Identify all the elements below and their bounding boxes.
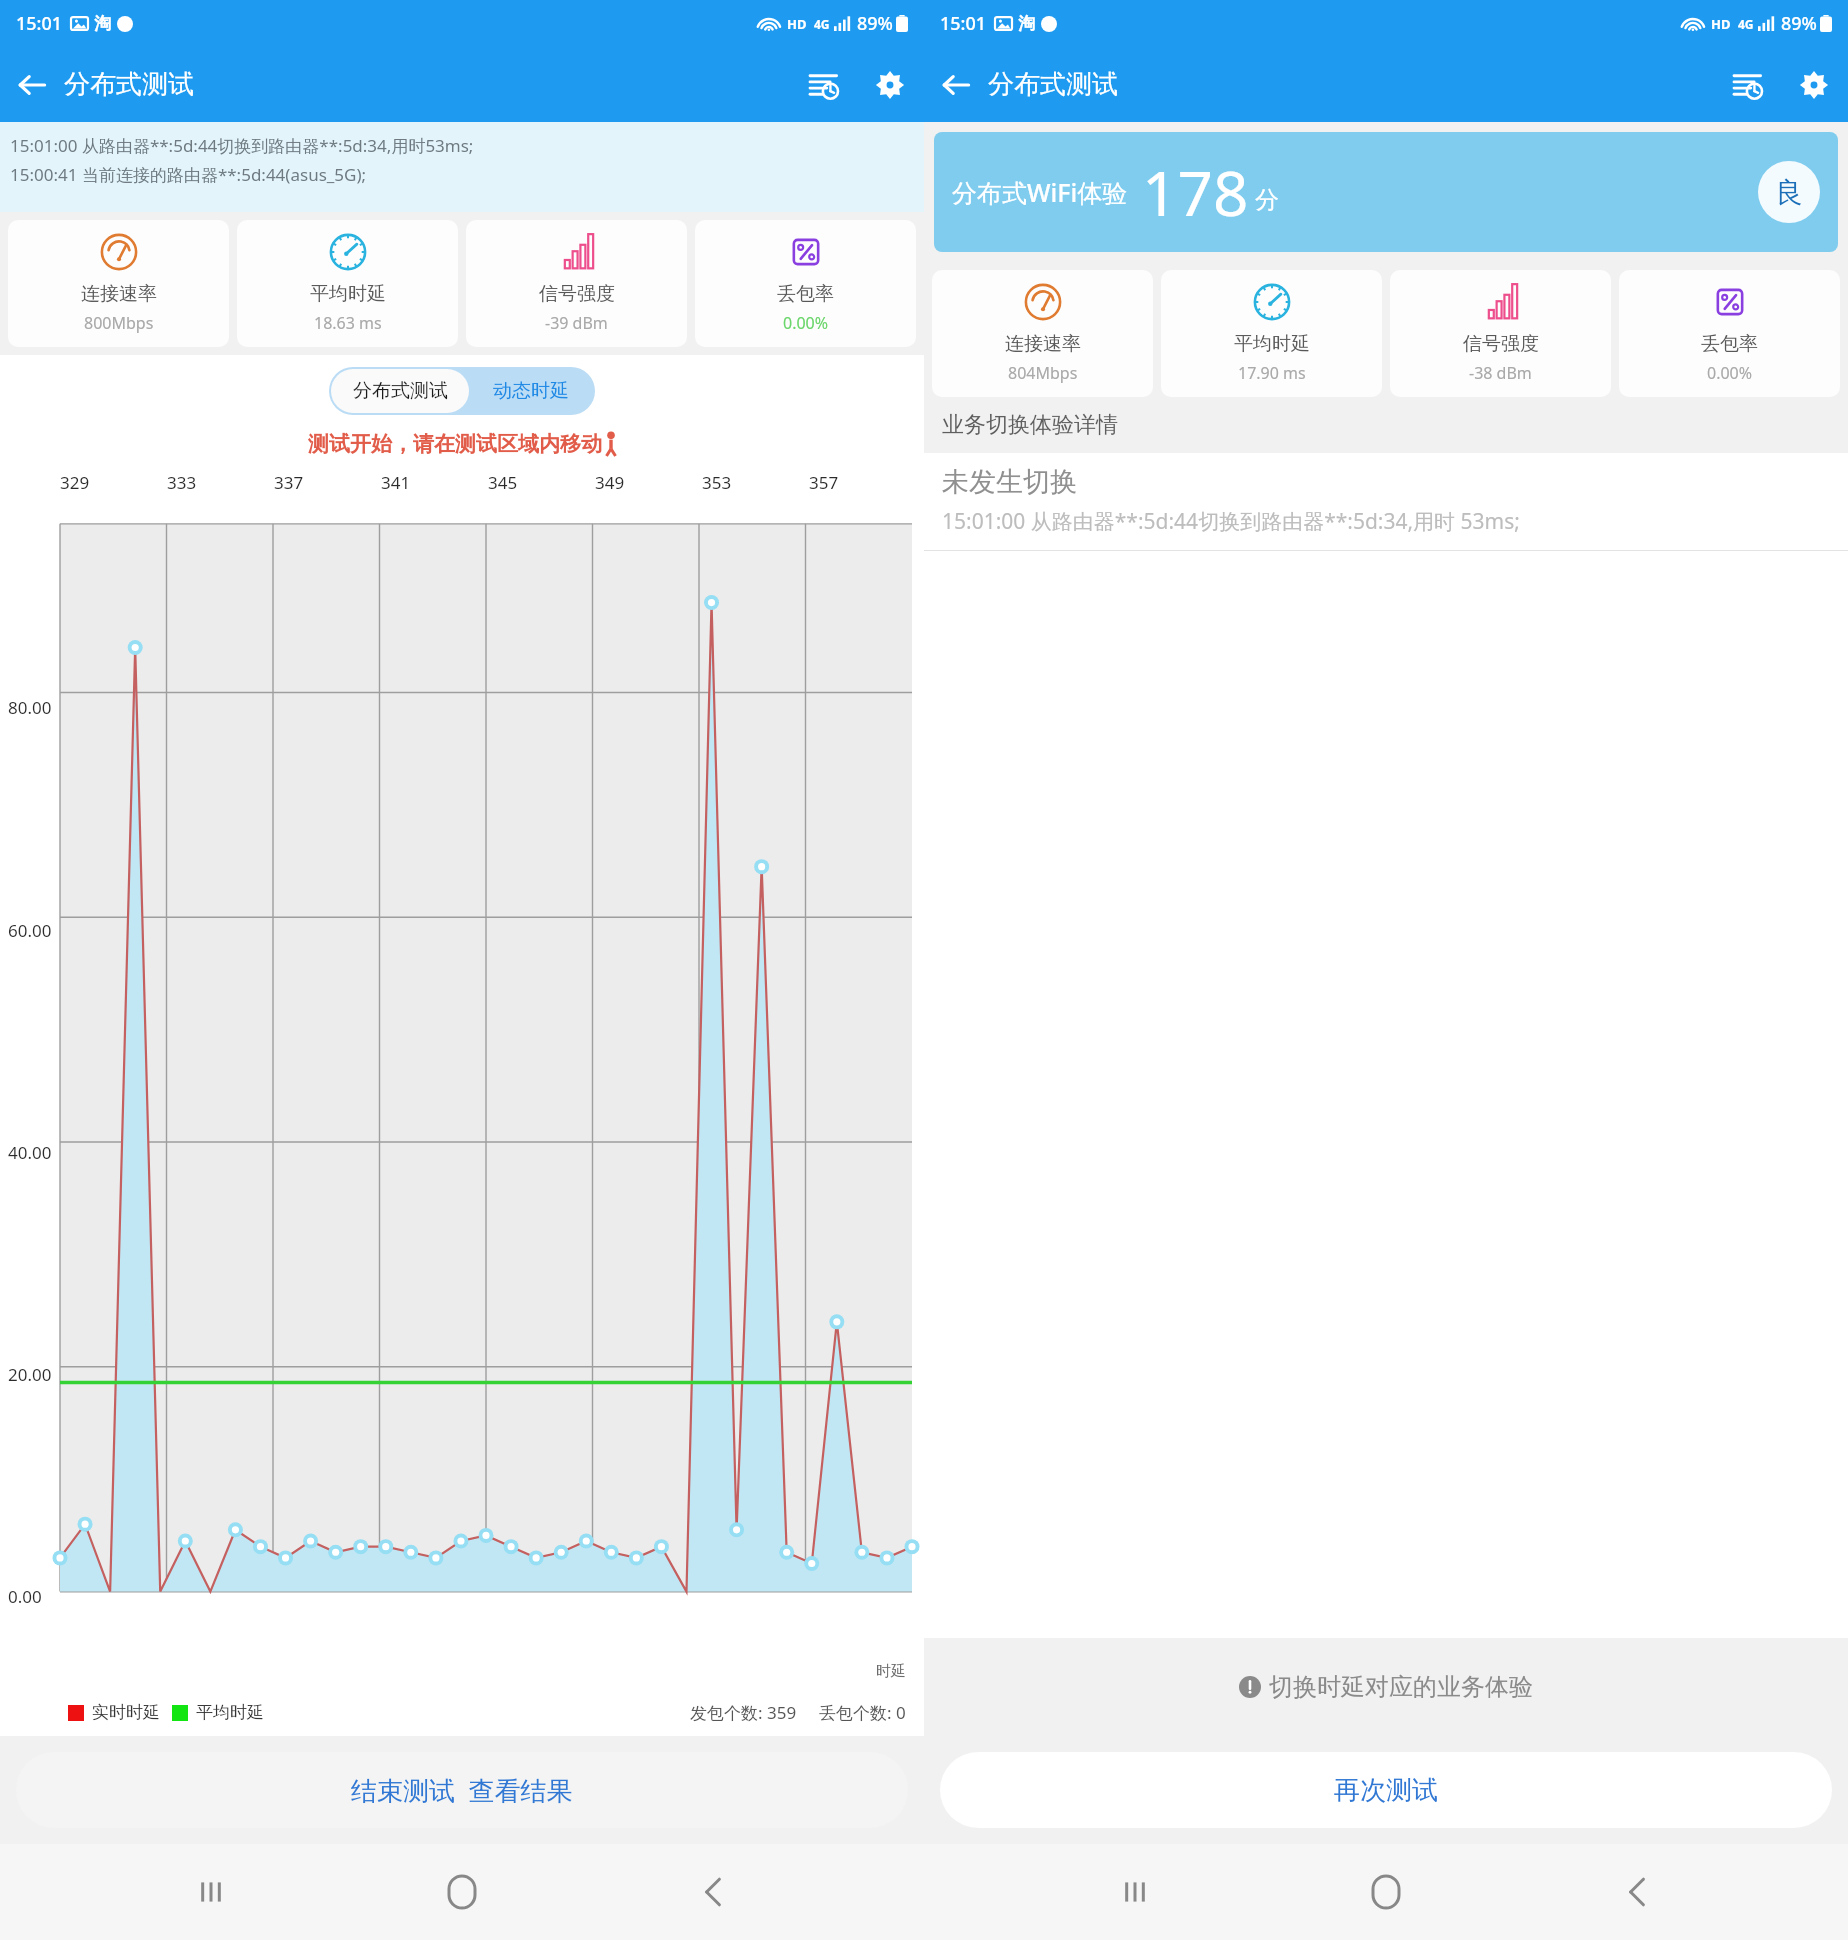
staticText: 0.00 <box>8 1585 42 1608</box>
staticText: 329 <box>60 471 90 494</box>
staticText: 信号强度 <box>539 282 615 306</box>
staticText: 15:01 <box>940 11 987 36</box>
staticText: HD <box>787 15 807 33</box>
staticText: 再次测试 <box>1334 1774 1438 1807</box>
button[interactable]: Back <box>924 53 988 117</box>
button[interactable]: 连接速率 <box>8 220 229 347</box>
button[interactable]: History <box>792 53 856 117</box>
staticText: 连接速率 <box>1005 332 1081 356</box>
staticText: 89% <box>857 11 893 36</box>
staticText: 切换时延对应的业务体验 <box>1269 1672 1533 1702</box>
button[interactable]: 结束测试 查看结果 <box>16 1752 908 1828</box>
staticText: 0.00% <box>1707 362 1753 384</box>
staticText: 分布式测试 <box>353 379 448 403</box>
staticText: 未发生切换 <box>942 465 1077 499</box>
staticText: 淘 <box>1018 13 1035 34</box>
staticText: 4G <box>1738 16 1754 32</box>
staticText: -39 dBm <box>545 312 608 334</box>
staticText: 80.00 <box>8 696 52 719</box>
staticText: 15:01:00 从路由器**:5d:44切换到路由器**:5d:34,用时 5… <box>942 507 1520 536</box>
button[interactable]: Recents <box>171 1852 251 1932</box>
staticText: 0.00% <box>783 312 829 334</box>
staticText: 804Mbps <box>1008 362 1078 384</box>
staticText: 实时时延 <box>92 1702 160 1723</box>
staticText: 333 <box>167 471 197 494</box>
button[interactable]: Back <box>0 53 64 117</box>
staticText: 测试开始，请在测试区域内移动 <box>308 431 602 457</box>
staticText: 353 <box>702 471 732 494</box>
button[interactable]: 动态时延 <box>469 369 593 413</box>
button[interactable]: 连接速率 <box>932 270 1153 397</box>
staticText: 分 <box>1255 185 1279 215</box>
staticText: 15:00:41 当前连接的路由器**:5d:44(asus_5G); <box>10 163 367 186</box>
button[interactable]: Home <box>422 1852 502 1932</box>
staticText: 15:01:00 从路由器**:5d:44切换到路由器**:5d:34,用时53… <box>10 134 474 157</box>
button[interactable]: Back <box>673 1852 753 1932</box>
staticText: 分布式WiFi体验 <box>952 175 1128 209</box>
staticText: 平均时延 <box>310 282 386 306</box>
staticText: 淘 <box>94 13 111 34</box>
staticText: 178 <box>1142 150 1249 234</box>
staticText: 17.90 ms <box>1238 362 1306 384</box>
staticText: -38 dBm <box>1469 362 1532 384</box>
button[interactable]: 再次测试 <box>940 1752 1832 1828</box>
button[interactable]: Settings <box>856 51 924 119</box>
button[interactable]: Settings <box>1780 51 1848 119</box>
staticText: 40.00 <box>8 1141 52 1164</box>
staticText: 平均时延 <box>196 1702 264 1723</box>
staticText: 15:01 <box>16 11 63 36</box>
button[interactable]: 丢包率 <box>695 220 916 347</box>
button[interactable]: History <box>1716 53 1780 117</box>
button[interactable]: 信号强度 <box>1390 270 1611 397</box>
staticText: 349 <box>595 471 625 494</box>
staticText: 时延 <box>876 1662 906 1681</box>
staticText: 分布式测试 <box>64 68 194 101</box>
button[interactable]: 平均时延 <box>1161 270 1382 397</box>
button[interactable]: 分布式测试 <box>331 369 469 413</box>
staticText: 分布式测试 <box>988 68 1118 101</box>
staticText: 信号强度 <box>1463 332 1539 356</box>
staticText: 20.00 <box>8 1363 52 1386</box>
staticText: 平均时延 <box>1234 332 1310 356</box>
staticText: 良 <box>1775 175 1803 210</box>
staticText: 业务切换体验详情 <box>942 411 1118 439</box>
staticText: 345 <box>488 471 518 494</box>
staticText: HD <box>1711 15 1731 33</box>
staticText: 丢包率 <box>1701 332 1758 356</box>
staticText: 结束测试 查看结果 <box>351 1772 573 1808</box>
staticText: 357 <box>809 471 839 494</box>
staticText: 丢包率 <box>777 282 834 306</box>
staticText: 4G <box>814 16 830 32</box>
button[interactable]: Home <box>1346 1852 1426 1932</box>
button[interactable]: Recents <box>1095 1852 1175 1932</box>
button[interactable]: 信号强度 <box>466 220 687 347</box>
staticText: 动态时延 <box>493 379 569 403</box>
staticText: 连接速率 <box>81 282 157 306</box>
staticText: 发包个数: 359 <box>690 1701 797 1724</box>
button[interactable]: 丢包率 <box>1619 270 1840 397</box>
staticText: 60.00 <box>8 919 52 942</box>
staticText: 18.63 ms <box>314 312 382 334</box>
button[interactable]: 平均时延 <box>237 220 458 347</box>
staticText: 89% <box>1781 11 1817 36</box>
button[interactable]: 分布式WiFi体验 <box>934 132 1838 252</box>
staticText: 800Mbps <box>84 312 154 334</box>
button[interactable]: Back <box>1597 1852 1677 1932</box>
staticText: 丢包个数: 0 <box>819 1701 906 1724</box>
staticText: 337 <box>274 471 304 494</box>
staticText: 341 <box>381 471 411 494</box>
